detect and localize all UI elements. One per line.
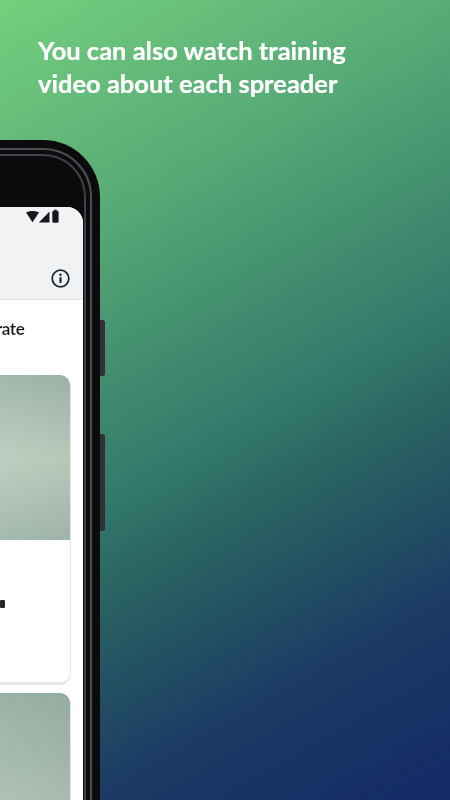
staticText: rate	[0, 318, 25, 338]
staticText: video about each spreader	[38, 68, 338, 99]
button[interactable]	[46, 264, 75, 293]
button[interactable]	[0, 375, 70, 682]
button[interactable]	[0, 693, 70, 800]
staticText: You can also watch training	[38, 35, 346, 66]
